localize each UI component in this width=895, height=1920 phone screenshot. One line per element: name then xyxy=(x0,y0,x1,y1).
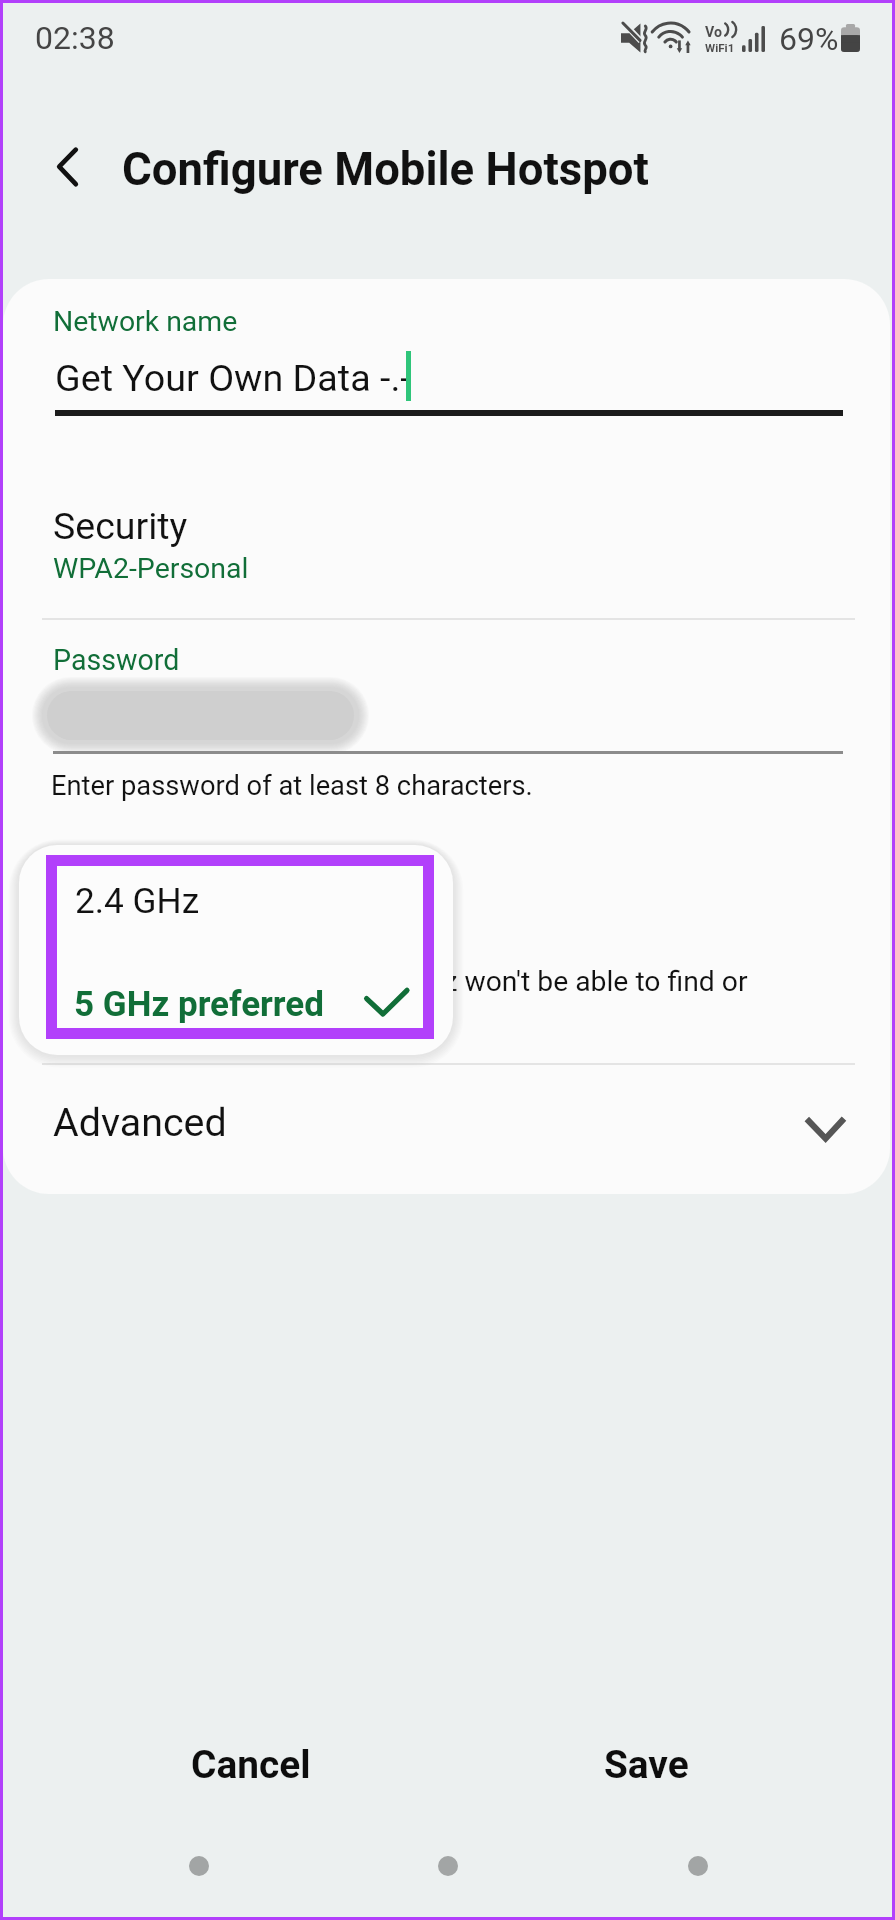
staticText: WiFi1 xyxy=(705,41,735,55)
button[interactable] xyxy=(8,470,887,617)
staticText: Security xyxy=(53,504,188,548)
button[interactable] xyxy=(19,950,453,1055)
staticText: Cancel xyxy=(191,1742,311,1787)
staticText: Configure Mobile Hotspot xyxy=(122,143,649,196)
staticText: 02:38 xyxy=(35,19,115,57)
button[interactable] xyxy=(8,840,887,1062)
staticText: 5 GHz preferred xyxy=(74,984,324,1025)
button[interactable]: Navigate up xyxy=(24,122,110,210)
staticText: Devices that only support 2.4 GHz won't … xyxy=(32,965,748,998)
button[interactable] xyxy=(8,1066,887,1196)
staticText: Network name xyxy=(53,305,238,338)
staticText: WPA2-Personal xyxy=(53,552,249,585)
button[interactable] xyxy=(150,1720,348,1812)
staticText: Save xyxy=(604,1742,689,1787)
staticText: Vo xyxy=(705,24,722,41)
staticText: Get Your Own Data -.- xyxy=(55,356,411,400)
staticText: 2.4 GHz xyxy=(75,880,200,921)
staticText: 69% xyxy=(779,20,839,58)
button[interactable] xyxy=(19,845,453,950)
button[interactable]: Home xyxy=(392,1832,504,1900)
staticText: Advanced xyxy=(53,1099,227,1145)
button[interactable]: Recent apps xyxy=(143,1832,255,1900)
button[interactable]: Back xyxy=(642,1832,754,1900)
staticText: Password xyxy=(53,643,180,677)
button[interactable] xyxy=(556,1720,736,1812)
staticText: Enter password of at least 8 characters. xyxy=(51,770,533,802)
